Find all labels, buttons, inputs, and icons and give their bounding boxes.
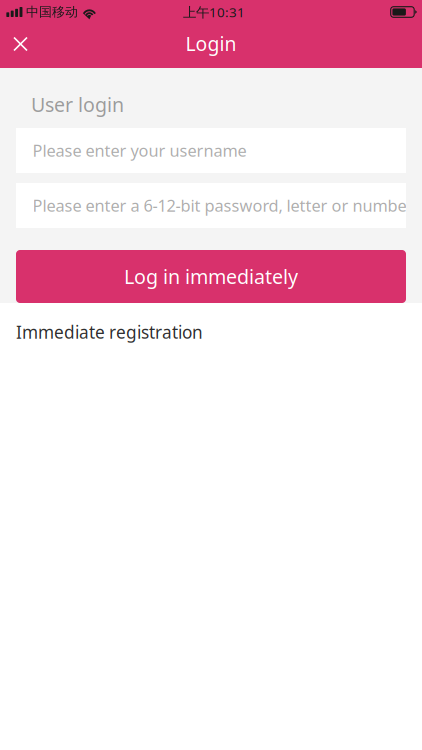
staticText: Please enter your username [32, 139, 246, 162]
staticText: 中国移动 [26, 4, 78, 20]
button[interactable]: Immediate registration [0, 303, 422, 361]
staticText: 上午10:31 [183, 3, 245, 21]
staticText: User login [31, 91, 124, 118]
staticText: Login [185, 30, 236, 57]
staticText: Log in immediately [124, 263, 298, 290]
button[interactable]: Log in immediately [16, 250, 406, 303]
staticText: Immediate registration [16, 320, 203, 344]
button[interactable]: Close [0, 24, 41, 68]
staticText: Please enter a 6-12-bit password, letter… [32, 194, 413, 217]
